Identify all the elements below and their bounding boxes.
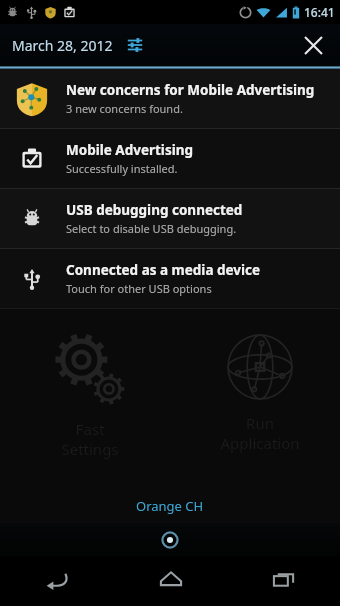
staticText: Select to disable USB debugging. <box>66 221 237 236</box>
button[interactable]: Home <box>114 556 227 602</box>
staticText: Touch for other USB options <box>66 281 212 296</box>
staticText: Mobile Advertising <box>66 141 194 159</box>
button[interactable]: New concerns for Mobile Advertising <box>0 69 340 128</box>
button[interactable]: Recent apps <box>227 556 340 602</box>
button[interactable]: Fast Settings <box>30 327 150 459</box>
button[interactable]: Mobile Advertising <box>0 129 340 188</box>
button[interactable]: Back <box>0 556 114 602</box>
button[interactable]: Connected as a media device <box>0 249 340 308</box>
button[interactable]: March 28, 2012 <box>12 33 147 57</box>
staticText: Run Application <box>220 413 300 453</box>
button[interactable]: Clear all notifications <box>296 28 330 62</box>
button[interactable]: Quick settings <box>123 33 147 57</box>
staticText: Successfully installed. <box>66 161 178 176</box>
staticText: Orange CH <box>136 497 204 515</box>
button[interactable]: Run Application <box>197 329 322 453</box>
staticText: 3 new concerns found. <box>66 101 183 116</box>
button[interactable]: USB debugging connected <box>0 189 340 248</box>
staticText: Connected as a media device <box>66 261 261 279</box>
staticText: USB debugging connected <box>66 201 243 219</box>
staticText: New concerns for Mobile Advertising <box>66 81 315 99</box>
button[interactable]: Close notification shade <box>0 523 340 556</box>
staticText: March 28, 2012 <box>12 36 113 55</box>
staticText: Fast Settings <box>61 419 119 459</box>
staticText: 16:41 <box>304 4 335 20</box>
